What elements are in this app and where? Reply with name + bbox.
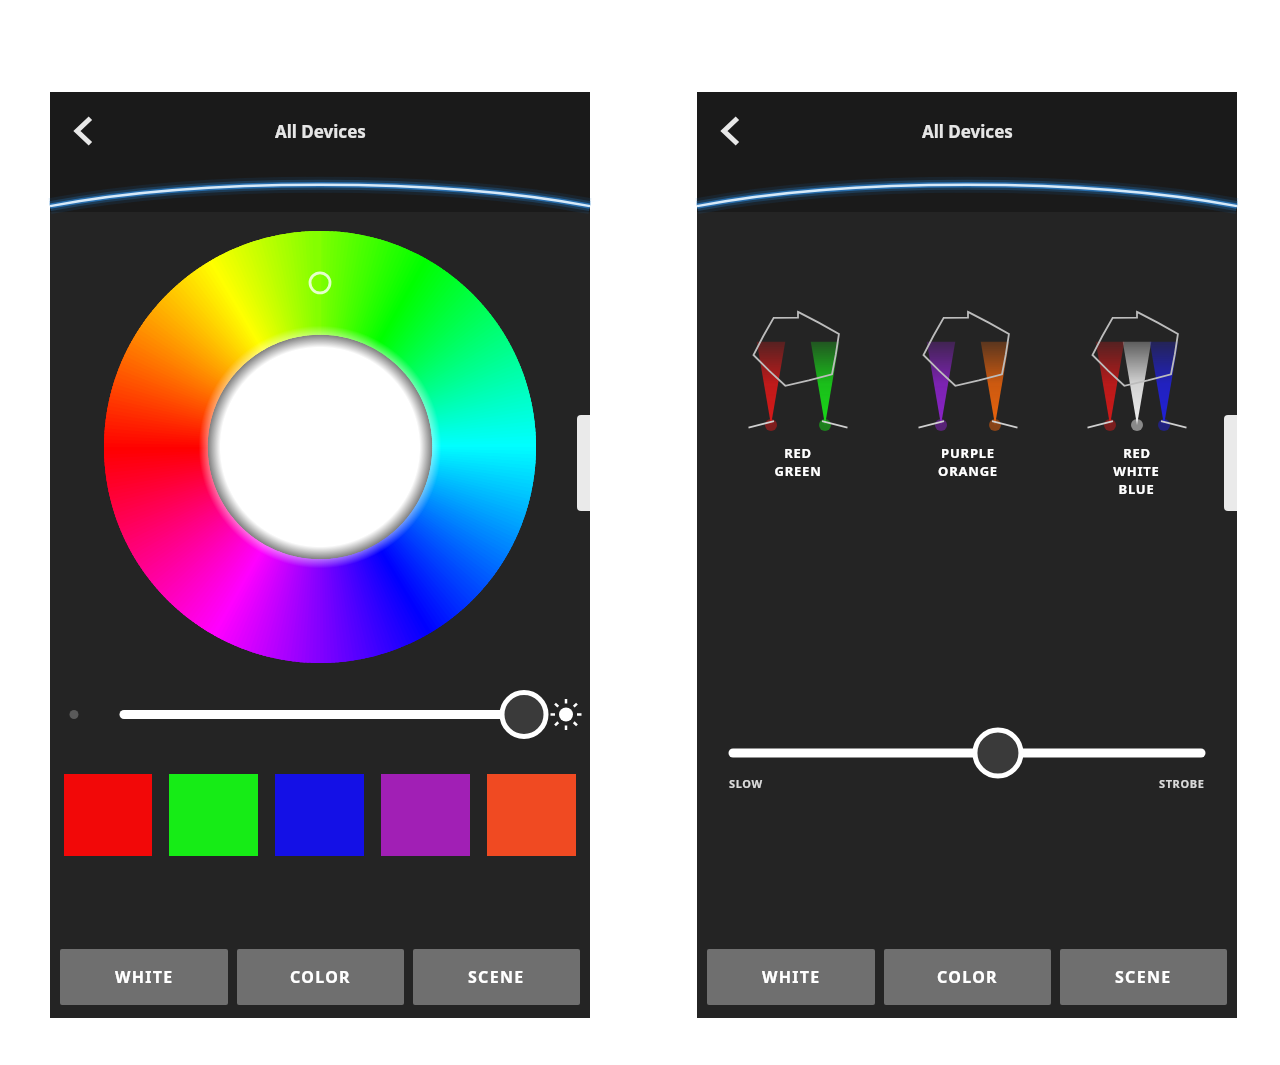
button[interactable]: COLOR bbox=[884, 949, 1051, 1005]
button[interactable]: Back bbox=[56, 103, 112, 159]
staticText: RED bbox=[784, 444, 812, 462]
button[interactable]: SCENE bbox=[413, 949, 580, 1005]
staticText: BLUE bbox=[1118, 480, 1155, 498]
button[interactable]: PURPLE bbox=[883, 308, 1052, 518]
staticText: WHITE bbox=[1113, 462, 1160, 480]
staticText: All Devices bbox=[922, 120, 1013, 143]
button[interactable]: WHITE bbox=[707, 949, 875, 1005]
staticText: RED bbox=[1123, 444, 1151, 462]
staticText: PURPLE bbox=[941, 444, 995, 462]
button[interactable]: SCENE bbox=[1060, 949, 1227, 1005]
staticText: ORANGE bbox=[938, 462, 998, 480]
staticText: STROBE bbox=[1159, 776, 1205, 791]
staticText: GREEN bbox=[774, 462, 822, 480]
button[interactable]: WHITE bbox=[60, 949, 228, 1005]
button[interactable]: RED bbox=[1052, 308, 1221, 518]
staticText: WHITE bbox=[762, 966, 821, 988]
staticText: All Devices bbox=[275, 120, 366, 143]
button[interactable]: Side panel handle bbox=[1224, 415, 1237, 511]
button[interactable]: Side panel handle bbox=[577, 415, 590, 511]
button[interactable]: COLOR bbox=[237, 949, 404, 1005]
staticText: SLOW bbox=[729, 776, 763, 791]
staticText: SCENE bbox=[468, 966, 525, 988]
staticText: SCENE bbox=[1115, 966, 1172, 988]
staticText: COLOR bbox=[290, 966, 351, 988]
staticText: WHITE bbox=[115, 966, 174, 988]
button[interactable]: RED bbox=[713, 308, 883, 518]
button[interactable]: Back bbox=[703, 103, 759, 159]
staticText: COLOR bbox=[937, 966, 998, 988]
